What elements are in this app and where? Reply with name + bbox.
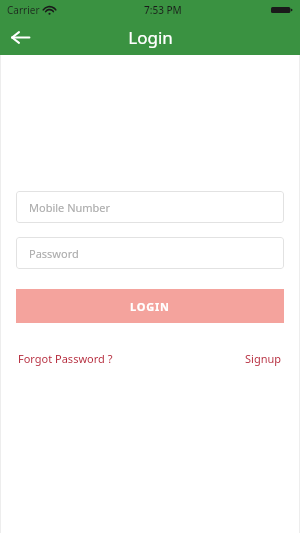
button[interactable]: Forgot Password ? [18, 348, 113, 369]
button[interactable]: LOGIN [16, 289, 284, 323]
button[interactable]: Password [16, 237, 284, 269]
staticText: Login [128, 26, 173, 49]
button[interactable]: Mobile Number [16, 191, 284, 223]
staticText: Carrier [7, 3, 40, 17]
staticText: Forgot Password ? [18, 351, 113, 366]
staticText: LOGIN [130, 299, 170, 314]
button[interactable]: Back [0, 20, 40, 55]
staticText: Signup [245, 351, 282, 366]
button[interactable]: Signup [245, 348, 282, 369]
staticText: 7:53 PM [144, 3, 182, 17]
staticText: Password [29, 246, 79, 261]
staticText: Mobile Number [29, 200, 111, 215]
